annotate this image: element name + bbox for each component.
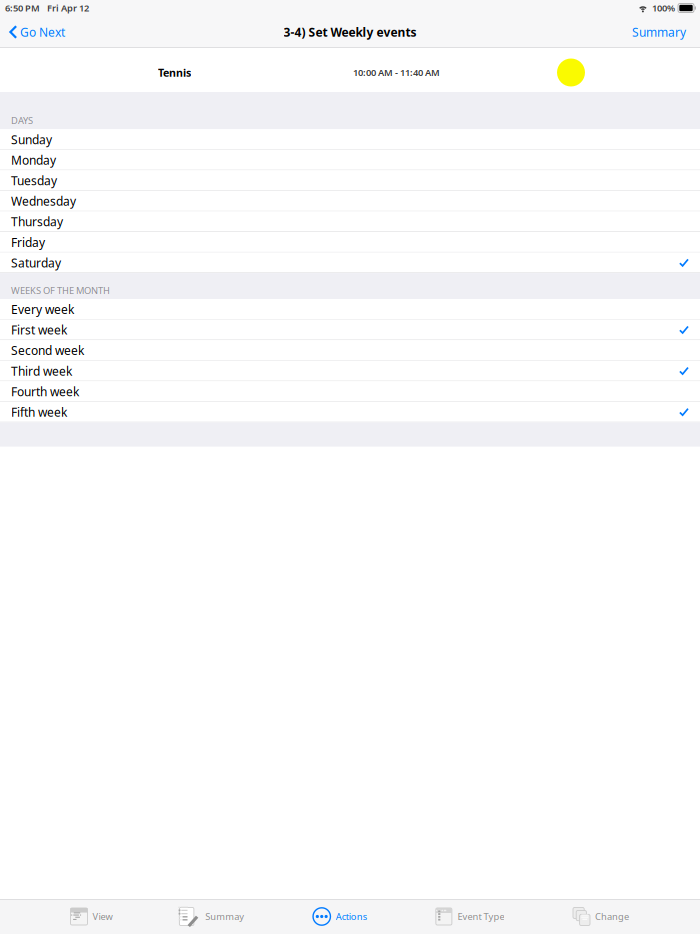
button[interactable]: View: [70, 899, 112, 934]
staticText: Second week: [11, 342, 84, 358]
staticText: Thursday: [11, 214, 63, 230]
staticText: Saturday: [11, 255, 61, 271]
staticText: Actions: [336, 910, 367, 923]
staticText: Fourth week: [11, 384, 79, 399]
button[interactable]: Thursday: [0, 211, 700, 232]
staticText: WEEKS OF THE MONTH: [11, 284, 110, 297]
staticText: Event Type: [457, 910, 504, 923]
staticText: 100%: [652, 2, 675, 14]
staticText: Summary: [632, 24, 686, 40]
button[interactable]: Friday: [0, 232, 700, 252]
button[interactable]: Second week: [0, 340, 700, 361]
button[interactable]: Change: [573, 899, 629, 934]
button[interactable]: Summay: [181, 899, 244, 934]
button[interactable]: First week: [0, 320, 700, 340]
staticText: View: [92, 910, 112, 923]
button[interactable]: Monday: [0, 150, 700, 170]
button[interactable]: Event Type: [435, 899, 504, 934]
staticText: Tennis: [158, 65, 191, 80]
staticText: Summay: [205, 910, 244, 923]
staticText: Go Next: [20, 24, 65, 40]
staticText: DAYS: [11, 114, 33, 127]
button[interactable]: Tuesday: [0, 170, 700, 191]
staticText: Tuesday: [11, 173, 57, 188]
staticText: 10:00 AM - 11:40 AM: [353, 66, 440, 79]
button[interactable]: Every week: [0, 299, 700, 320]
button[interactable]: Fifth week: [0, 402, 700, 422]
button[interactable]: Sunday: [0, 129, 700, 150]
staticText: Change: [595, 910, 629, 923]
staticText: Wednesday: [11, 193, 76, 209]
staticText: Sunday: [11, 131, 52, 147]
staticText: Friday: [11, 234, 45, 250]
button[interactable]: Saturday: [0, 252, 700, 273]
staticText: Every week: [11, 301, 74, 317]
button[interactable]: Actions: [313, 899, 367, 934]
staticText: First week: [11, 322, 67, 338]
staticText: Fifth week: [11, 404, 67, 420]
button[interactable]: Go Next: [0, 16, 73, 48]
staticText: Monday: [11, 152, 56, 168]
staticText: Third week: [11, 363, 72, 379]
button[interactable]: Fourth week: [0, 381, 700, 402]
button[interactable]: Summary: [618, 16, 700, 48]
button[interactable]: Wednesday: [0, 191, 700, 211]
staticText: Fri Apr 12: [47, 2, 89, 14]
staticText: 3-4) Set Weekly events: [283, 24, 416, 40]
button[interactable]: Third week: [0, 361, 700, 381]
staticText: 6:50 PM: [5, 2, 40, 14]
